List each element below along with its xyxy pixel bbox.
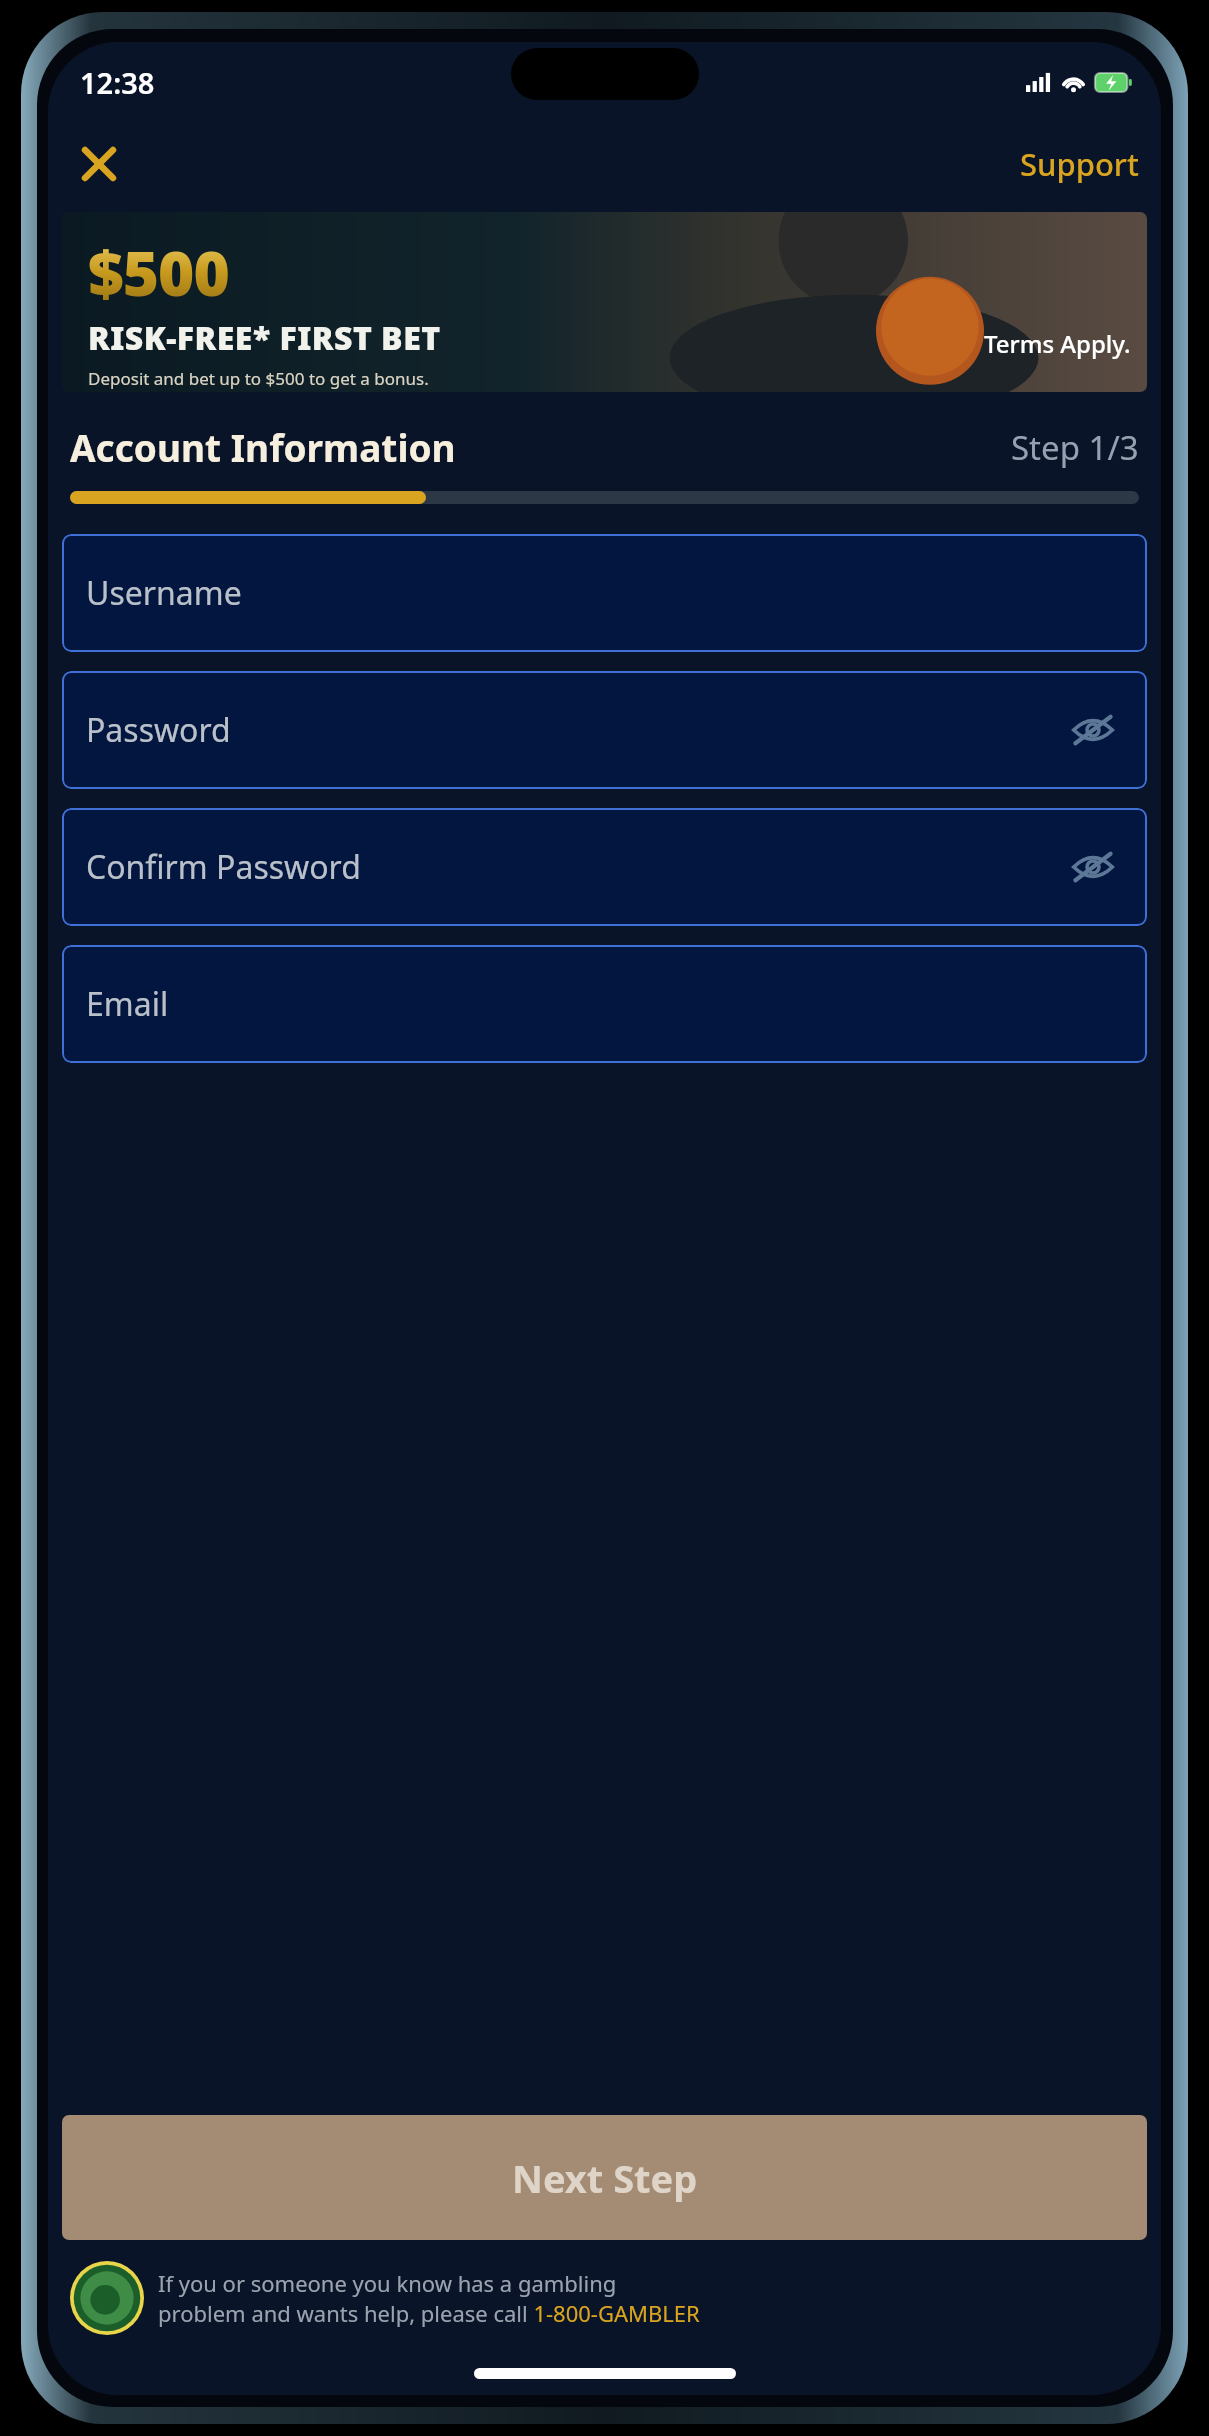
button[interactable]: Show password — [1065, 839, 1121, 895]
button[interactable]: Username — [62, 534, 1147, 652]
staticText: Password — [86, 708, 231, 752]
staticText: Deposit and bet up to $500 to get a bonu… — [88, 367, 429, 390]
button[interactable]: Password — [62, 671, 1147, 789]
staticText: Step 1/3 — [1011, 425, 1139, 470]
staticText: $500 — [88, 230, 229, 314]
button[interactable]: $500 — [62, 212, 1147, 392]
staticText: Confirm Password — [86, 845, 361, 889]
staticText: Email — [86, 982, 169, 1026]
button[interactable]: Support — [1010, 135, 1149, 193]
staticText: Next Step — [512, 2152, 698, 2204]
button[interactable]: Email — [62, 945, 1147, 1063]
button[interactable]: Confirm Password — [62, 808, 1147, 926]
button[interactable]: Next Step — [62, 2115, 1147, 2240]
button[interactable]: Close — [68, 133, 130, 195]
staticText: If you or someone you know has a gamblin… — [158, 2268, 617, 2298]
staticText: Terms Apply. — [984, 327, 1131, 360]
staticText: Username — [86, 571, 242, 615]
button[interactable]: Show password — [1065, 702, 1121, 758]
staticText: Account Information — [70, 422, 456, 472]
staticText: RISK-FREE* FIRST BET — [88, 316, 441, 360]
staticText: Support — [1020, 143, 1139, 185]
staticText: problem and wants help, please call 1-80… — [158, 2298, 700, 2328]
staticText: 12:38 — [80, 63, 155, 102]
